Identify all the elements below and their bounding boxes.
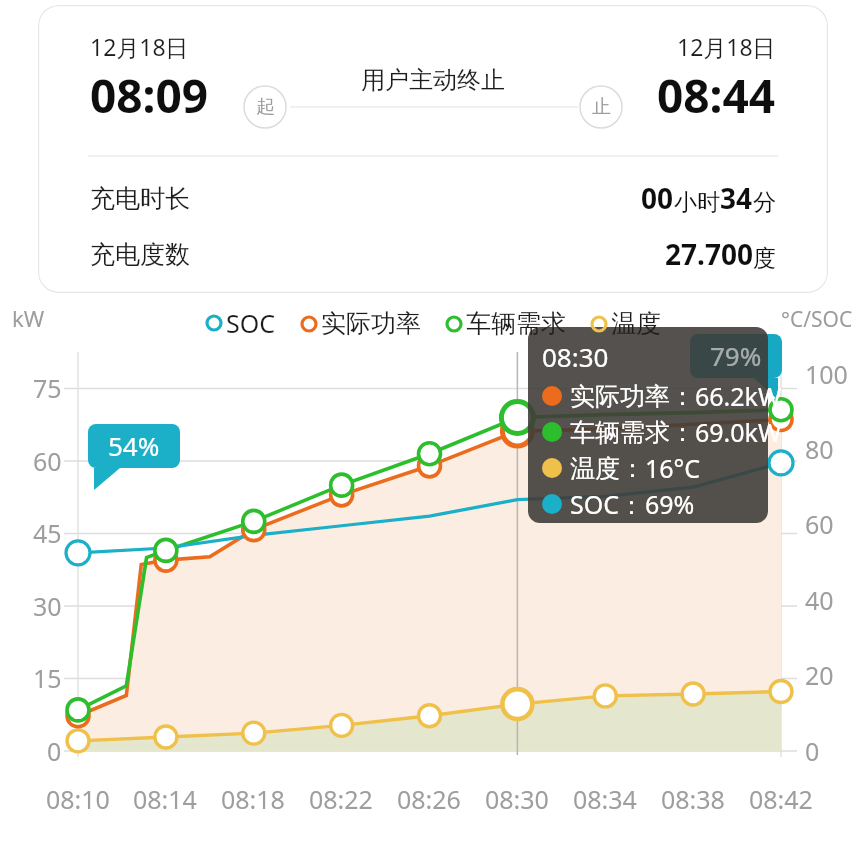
- staticText: SOC: [226, 306, 276, 340]
- staticText: 75: [33, 371, 62, 405]
- staticText: 起: [256, 95, 275, 119]
- staticText: 30: [33, 589, 62, 623]
- staticText: 34: [720, 179, 753, 217]
- button[interactable]: 温度: [588, 304, 663, 343]
- staticText: 45: [33, 516, 62, 550]
- staticText: 08:44: [657, 64, 776, 127]
- staticText: 12月18日: [677, 31, 776, 62]
- staticText: 08:26: [397, 782, 461, 816]
- staticText: 08:18: [221, 782, 285, 816]
- button[interactable]: 充电时长: [90, 177, 776, 219]
- staticText: 0: [47, 734, 62, 768]
- staticText: 0: [805, 734, 820, 768]
- staticText: 00: [641, 179, 674, 217]
- staticText: 小时: [674, 188, 720, 217]
- staticText: 止: [592, 95, 611, 119]
- button[interactable]: 起: [243, 85, 287, 129]
- staticText: kW: [12, 303, 45, 333]
- staticText: °C/SOC: [781, 305, 853, 334]
- staticText: 69%: [645, 487, 695, 521]
- staticText: 60: [33, 444, 62, 478]
- button[interactable]: 实际功率: [298, 304, 423, 343]
- staticText: 实际功率: [321, 308, 421, 339]
- staticText: 08:34: [573, 782, 637, 816]
- staticText: 15: [33, 661, 62, 695]
- staticText: 60: [805, 507, 834, 541]
- staticText: 08:10: [46, 782, 110, 816]
- staticText: 40: [805, 583, 834, 617]
- staticText: 12月18日: [90, 31, 189, 62]
- staticText: 温度：: [570, 453, 645, 484]
- button[interactable]: 车辆需求: [443, 304, 568, 343]
- staticText: 100: [805, 357, 848, 391]
- staticText: 充电时长: [90, 183, 190, 214]
- staticText: 08:14: [133, 782, 197, 816]
- staticText: 66.2kW: [695, 379, 782, 413]
- button[interactable]: 止: [579, 85, 623, 129]
- staticText: 08:09: [90, 64, 209, 127]
- staticText: 分: [753, 188, 776, 217]
- staticText: 温度: [611, 308, 661, 339]
- button[interactable]: 充电度数: [90, 233, 776, 275]
- staticText: 08:22: [309, 782, 373, 816]
- staticText: 80: [805, 432, 834, 466]
- staticText: SOC：: [570, 487, 645, 521]
- staticText: 08:38: [661, 782, 725, 816]
- staticText: 用户主动终止: [361, 65, 505, 95]
- staticText: 车辆需求：: [570, 417, 695, 448]
- staticText: 54%: [108, 428, 160, 463]
- staticText: 车辆需求: [466, 308, 566, 339]
- staticText: 20: [805, 658, 834, 692]
- staticText: 69.0kW: [695, 415, 782, 449]
- staticText: 实际功率：: [570, 381, 695, 412]
- staticText: 度: [753, 244, 776, 273]
- staticText: 27.700: [665, 235, 753, 273]
- staticText: 16°C: [645, 451, 701, 485]
- staticText: 08:30: [542, 339, 609, 374]
- staticText: 08:42: [749, 782, 813, 816]
- staticText: 79%: [710, 338, 762, 373]
- button[interactable]: SOC: [203, 302, 278, 344]
- staticText: 08:30: [485, 782, 549, 816]
- staticText: 充电度数: [90, 239, 190, 270]
- button[interactable]: 12月18日: [38, 5, 828, 293]
